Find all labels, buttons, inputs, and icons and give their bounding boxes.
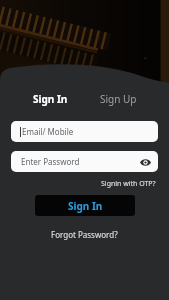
button[interactable]: Signin with OTP? <box>99 177 158 191</box>
staticText: Sign In <box>33 92 68 106</box>
staticText: Forgot Password? <box>51 229 118 240</box>
button[interactable]: Forgot Password? <box>47 227 122 242</box>
button[interactable]: Sign In <box>27 89 74 109</box>
staticText: Sign In <box>68 199 103 213</box>
button[interactable]: Sign In <box>35 195 135 216</box>
button[interactable]: Show password <box>138 155 152 169</box>
button[interactable]: Sign Up <box>94 89 143 109</box>
staticText: Signin with OTP? <box>101 179 156 189</box>
button[interactable]: Enter Password <box>11 151 158 172</box>
staticText: Email/ Mobile <box>22 126 74 137</box>
button[interactable]: Email/ Mobile <box>11 121 158 142</box>
staticText: Enter Password <box>21 156 80 167</box>
staticText: Sign Up <box>100 92 137 106</box>
